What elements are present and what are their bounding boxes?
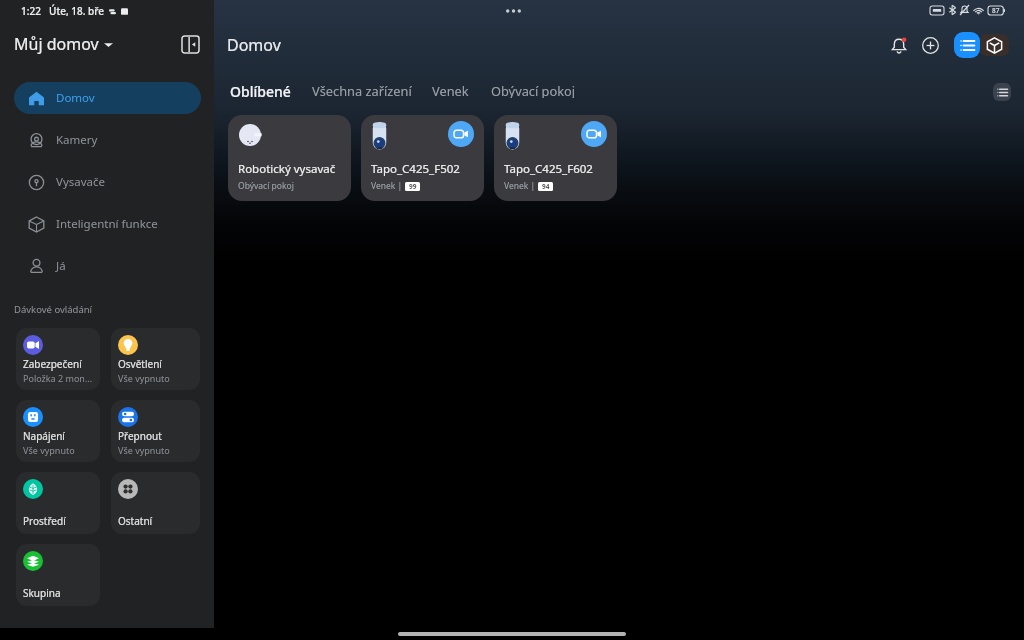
button[interactable]: Skupina	[16, 544, 100, 606]
staticText: Domov	[227, 34, 281, 56]
staticText: Všechna zařízení	[312, 82, 412, 98]
button[interactable]: Zabezpečení	[16, 328, 100, 390]
staticText: Obývací pokoj	[491, 82, 576, 98]
button[interactable]: Osvětlení	[111, 328, 200, 390]
button[interactable]: Kamery	[14, 124, 201, 156]
button[interactable]: Sort and filter	[993, 83, 1011, 101]
button[interactable]: Tapo_C425_F602	[494, 115, 617, 201]
staticText: Napájení	[23, 429, 65, 443]
staticText: Skupina	[23, 586, 61, 600]
button[interactable]: Všechna zařízení	[312, 76, 412, 104]
staticText: Venek	[432, 82, 469, 98]
button[interactable]: Collapse navigation	[177, 31, 203, 57]
button[interactable]: Napájení	[16, 400, 100, 462]
staticText: Venek |	[504, 180, 536, 192]
staticText: Inteligentní funkce	[56, 216, 158, 232]
staticText: Robotický vysavač	[238, 161, 336, 177]
button[interactable]: Přepnout	[111, 400, 200, 462]
staticText: Vysavače	[56, 174, 106, 190]
staticText: Vše vypnuto	[118, 372, 170, 384]
staticText: Přepnout	[118, 429, 162, 443]
button[interactable]: Notifications	[884, 30, 914, 60]
staticText: Tapo_C425_F602	[504, 161, 593, 177]
staticText: Domov	[56, 90, 95, 106]
button[interactable]: Activity	[954, 32, 980, 58]
staticText: 1:22	[21, 4, 41, 18]
staticText: Můj domov	[14, 33, 99, 55]
staticText: Ostatní	[118, 514, 153, 528]
staticText: Vše vypnuto	[23, 444, 75, 456]
button[interactable]: Add device	[915, 30, 945, 60]
button[interactable]: Robotický vysavač	[228, 115, 351, 201]
staticText: Prostředí	[23, 514, 66, 528]
staticText: 94	[542, 182, 550, 191]
staticText: Zabezpečení	[23, 357, 82, 371]
staticText: Úte, 18. bře	[49, 4, 105, 18]
staticText: 99	[409, 182, 417, 191]
staticText: 87	[992, 6, 1000, 15]
button[interactable]: Inteligentní funkce	[14, 208, 201, 240]
staticText: Vše vypnuto	[118, 444, 170, 456]
button[interactable]: Venek	[432, 76, 469, 104]
button[interactable]: Obývací pokoj	[491, 76, 576, 104]
button[interactable]: Domov	[14, 82, 201, 114]
button[interactable]: Account	[980, 34, 1009, 56]
staticText: Dávkové ovládání	[14, 303, 93, 316]
button[interactable]: Já	[14, 250, 201, 282]
button[interactable]: Můj domov	[14, 33, 113, 55]
staticText: Venek |	[371, 180, 403, 192]
button[interactable]: Oblíbené	[230, 76, 291, 104]
staticText: Oblíbené	[230, 82, 291, 98]
button[interactable]: Ostatní	[111, 472, 200, 534]
staticText: Kamery	[56, 132, 98, 148]
staticText: Položka 2 mon…	[23, 372, 93, 384]
button[interactable]: Prostředí	[16, 472, 100, 534]
button[interactable]: Vysavače	[14, 166, 201, 198]
staticText: Obývací pokoj	[238, 180, 294, 192]
button[interactable]: Tapo_C425_F502	[361, 115, 484, 201]
staticText: Já	[56, 258, 66, 274]
staticText: Osvětlení	[118, 357, 162, 371]
staticText: Tapo_C425_F502	[371, 161, 460, 177]
